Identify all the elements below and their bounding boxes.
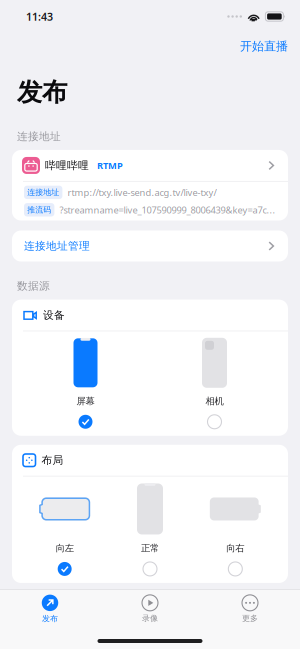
button[interactable]: 发布	[0, 595, 100, 623]
staticText: 向左	[56, 542, 74, 554]
staticText: 屏幕	[76, 395, 94, 407]
staticText: 相机	[205, 395, 223, 407]
staticText: 哔哩哔哩	[45, 159, 89, 172]
staticText: 向右	[226, 542, 244, 554]
staticText: 连接地址	[27, 187, 59, 197]
button[interactable]: 更多	[200, 595, 300, 623]
button[interactable]: 正常	[107, 483, 193, 576]
staticText: 设备	[43, 309, 65, 322]
staticText: 录像	[142, 613, 158, 623]
staticText: 发布	[17, 77, 67, 108]
staticText: 更多	[242, 613, 258, 623]
button[interactable]: 屏幕	[21, 338, 150, 429]
button[interactable]: 录像	[100, 595, 200, 623]
staticText: 布局	[41, 454, 63, 467]
button[interactable]: 哔哩哔哩	[12, 150, 288, 181]
button[interactable]: 连接地址管理	[0, 230, 300, 261]
staticText: 连接地址	[17, 130, 61, 143]
staticText: 开始直播	[240, 39, 288, 54]
staticText: 推流码	[27, 205, 51, 215]
button[interactable]: 向右	[193, 483, 278, 576]
staticText: 发布	[42, 614, 58, 623]
staticText: 正常	[141, 542, 159, 554]
staticText: rtmp://txy.live-send.acg.tv/live-txy/	[67, 186, 216, 199]
button[interactable]: 向左	[22, 483, 107, 576]
button[interactable]: 开始直播	[234, 35, 294, 58]
staticText: 数据源	[17, 279, 50, 293]
staticText: 11:43	[26, 9, 53, 24]
button[interactable]: 相机	[150, 338, 279, 429]
staticText: ?streamname=live_107590999_8006439&key=a…	[59, 204, 275, 216]
staticText: RTMP	[97, 159, 123, 172]
staticText: 连接地址管理	[24, 239, 90, 253]
